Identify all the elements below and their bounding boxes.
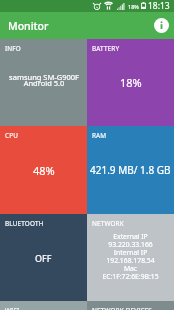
staticText: 18% xyxy=(120,75,142,90)
staticText: 18:13 xyxy=(148,0,170,12)
staticText: 48% xyxy=(33,163,55,178)
staticText: WIFI xyxy=(5,306,20,310)
button[interactable]: BLUETOOTH xyxy=(0,214,87,301)
button[interactable]: NETWORK xyxy=(87,214,174,301)
staticText: External IP 93.220.33.166 Internal IP 19… xyxy=(102,232,159,281)
staticText: NETWORK DEVICES xyxy=(92,306,152,310)
button[interactable]: NETWORK DEVICES xyxy=(87,301,174,310)
staticText: 18% xyxy=(128,3,139,10)
staticText: NETWORK xyxy=(92,219,124,228)
button[interactable]: Info xyxy=(151,15,171,35)
staticText: INFO xyxy=(5,44,21,53)
staticText: Monitor xyxy=(8,19,49,33)
staticText: CPU xyxy=(5,131,19,140)
staticText: RAM xyxy=(92,131,107,140)
button[interactable]: WIFI xyxy=(0,301,87,310)
staticText: BLUETOOTH xyxy=(5,219,44,228)
staticText: BATTERY xyxy=(92,44,120,53)
button[interactable]: INFO xyxy=(0,39,87,126)
button[interactable]: RAM xyxy=(87,126,174,214)
button[interactable]: BATTERY xyxy=(87,39,174,126)
staticText: samsung SM-G900F Android 5.0 xyxy=(9,72,79,88)
staticText: OFF xyxy=(35,252,52,264)
button[interactable]: CPU xyxy=(0,126,87,214)
staticText: 421.9 MB/ 1.8 GB xyxy=(90,163,171,177)
